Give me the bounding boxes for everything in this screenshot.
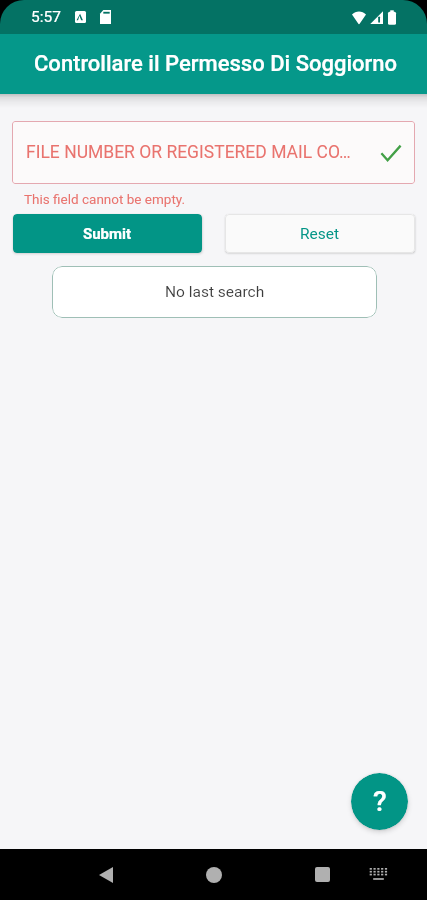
staticText: Submit bbox=[83, 225, 132, 243]
staticText: Reset bbox=[300, 225, 340, 243]
button[interactable]: FILE NUMBER OR REGISTERED MAIL CO… bbox=[12, 121, 415, 184]
button[interactable]: Submit bbox=[13, 214, 202, 253]
staticText: Controllare il Permesso Di Soggiorno bbox=[34, 51, 398, 77]
staticText: 5:57 bbox=[31, 8, 61, 26]
button[interactable]: Switch keyboard bbox=[356, 849, 400, 900]
button[interactable]: Reset bbox=[225, 214, 415, 253]
button[interactable]: Back bbox=[78, 849, 134, 900]
staticText: FILE NUMBER OR REGISTERED MAIL CO… bbox=[26, 142, 351, 163]
button[interactable]: Help bbox=[351, 773, 408, 830]
staticText: No last search bbox=[165, 283, 265, 301]
button[interactable]: No last search bbox=[52, 266, 377, 318]
staticText: This field cannot be empty. bbox=[24, 191, 186, 207]
staticText: ? bbox=[373, 785, 387, 818]
button[interactable]: Home bbox=[186, 849, 242, 900]
button[interactable]: Recents bbox=[294, 849, 350, 900]
